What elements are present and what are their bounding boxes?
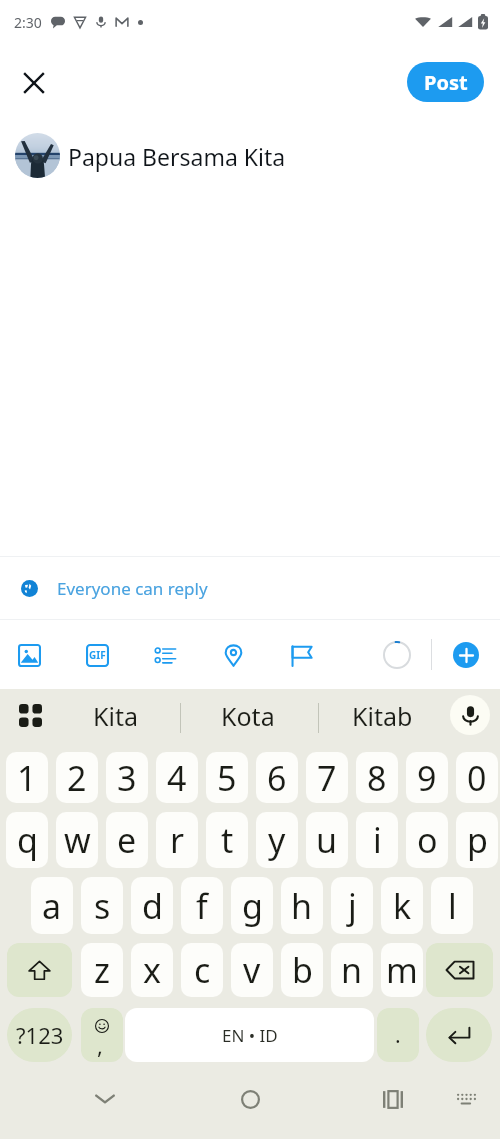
button[interactable]: l xyxy=(431,877,473,934)
staticText: y xyxy=(268,817,286,863)
button[interactable]: Kitab xyxy=(320,689,444,743)
staticText: 0 xyxy=(467,755,487,801)
button[interactable]: Add photo xyxy=(5,631,53,679)
button[interactable]: v xyxy=(231,943,273,997)
button[interactable]: s xyxy=(81,877,123,934)
button[interactable]: Backspace xyxy=(426,943,493,997)
staticText: 5 xyxy=(217,755,237,801)
button[interactable]: k xyxy=(381,877,423,934)
button[interactable]: r xyxy=(156,812,198,868)
button[interactable]: q xyxy=(6,812,48,868)
button[interactable]: Kita xyxy=(53,689,177,743)
button[interactable]: w xyxy=(56,812,98,868)
button[interactable]: c xyxy=(181,943,223,997)
button[interactable]: e xyxy=(106,812,148,868)
button[interactable]: ?123 xyxy=(7,1008,72,1062)
button[interactable]: Add location xyxy=(209,631,257,679)
staticText: i xyxy=(373,817,382,863)
button[interactable]: Add GIF xyxy=(73,631,121,679)
staticText: , xyxy=(97,1030,103,1060)
button[interactable]: Home xyxy=(226,1075,274,1123)
button[interactable]: j xyxy=(331,877,373,934)
staticText: EN • ID xyxy=(222,1024,278,1047)
staticText: 8 xyxy=(367,755,387,801)
button[interactable]: Post xyxy=(407,62,484,102)
button[interactable]: 7 xyxy=(306,752,348,803)
staticText: v xyxy=(243,947,261,993)
staticText: GIF xyxy=(89,648,106,662)
staticText: h xyxy=(291,883,313,929)
button[interactable]: d xyxy=(131,877,173,934)
staticText: 2 xyxy=(67,755,87,801)
staticText: b xyxy=(292,947,313,993)
staticText: l xyxy=(448,883,457,929)
button[interactable]: 2 xyxy=(56,752,98,803)
button[interactable]: m xyxy=(381,943,423,997)
button[interactable]: 0 xyxy=(456,752,498,803)
button[interactable]: o xyxy=(406,812,448,868)
button[interactable]: Enter xyxy=(426,1008,492,1062)
staticText: Kita xyxy=(93,699,138,733)
button[interactable]: Switch keyboard xyxy=(442,1075,490,1123)
staticText: t xyxy=(221,817,234,863)
button[interactable]: y xyxy=(256,812,298,868)
button[interactable]: p xyxy=(456,812,498,868)
staticText: o xyxy=(417,817,438,863)
button[interactable]: u xyxy=(306,812,348,868)
staticText: g xyxy=(242,883,263,929)
button[interactable]: Add post xyxy=(453,642,479,668)
staticText: 6 xyxy=(267,755,287,801)
button[interactable]: Shift xyxy=(7,943,72,997)
staticText: z xyxy=(94,947,110,993)
button[interactable]: Keyboard options xyxy=(12,697,48,733)
staticText: 9 xyxy=(417,755,437,801)
staticText: u xyxy=(316,817,338,863)
button[interactable]: Voice input xyxy=(450,695,490,735)
staticText: 3 xyxy=(117,755,137,801)
button[interactable]: Everyone can reply xyxy=(0,557,500,619)
button[interactable]: a xyxy=(31,877,73,934)
staticText: ?123 xyxy=(16,1020,64,1050)
button[interactable]: Profile photo xyxy=(15,133,60,178)
button[interactable]: i xyxy=(356,812,398,868)
staticText: e xyxy=(117,817,137,863)
button[interactable]: Add poll xyxy=(141,631,189,679)
button[interactable]: Add topic xyxy=(277,631,325,679)
staticText: Kitab xyxy=(352,699,413,733)
staticText: n xyxy=(341,947,363,993)
button[interactable]: n xyxy=(331,943,373,997)
staticText: s xyxy=(94,883,111,929)
button[interactable]: Close xyxy=(13,62,54,103)
button[interactable]: EN • ID xyxy=(125,1008,374,1062)
button[interactable]: 4 xyxy=(156,752,198,803)
button[interactable]: h xyxy=(281,877,323,934)
button[interactable]: 8 xyxy=(356,752,398,803)
button[interactable]: g xyxy=(231,877,273,934)
staticText: 1 xyxy=(17,755,37,801)
staticText: Everyone can reply xyxy=(57,577,208,600)
button[interactable]: Back xyxy=(81,1075,129,1123)
button[interactable]: f xyxy=(181,877,223,934)
button[interactable]: 3 xyxy=(106,752,148,803)
button[interactable]: z xyxy=(81,943,123,997)
staticText: Kota xyxy=(221,699,275,733)
button[interactable]: 6 xyxy=(256,752,298,803)
button[interactable]: Emoji xyxy=(81,1008,123,1062)
button[interactable]: 9 xyxy=(406,752,448,803)
staticText: x xyxy=(143,947,161,993)
staticText: q xyxy=(17,817,38,863)
button[interactable]: b xyxy=(281,943,323,997)
button[interactable]: . xyxy=(377,1008,419,1062)
staticText: j xyxy=(348,883,357,929)
staticText: c xyxy=(194,947,211,993)
button[interactable]: Recent apps xyxy=(369,1075,417,1123)
staticText: 4 xyxy=(167,755,187,801)
staticText: d xyxy=(142,883,163,929)
button[interactable]: Kota xyxy=(186,689,310,743)
staticText: 7 xyxy=(317,755,337,801)
button[interactable]: t xyxy=(206,812,248,868)
staticText: w xyxy=(64,817,91,863)
button[interactable]: 5 xyxy=(206,752,248,803)
button[interactable]: x xyxy=(131,943,173,997)
button[interactable]: 1 xyxy=(6,752,48,803)
